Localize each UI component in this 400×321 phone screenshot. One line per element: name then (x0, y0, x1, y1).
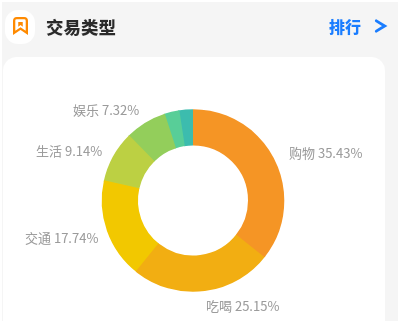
staticText: 吃喝 25.15% (206, 296, 280, 315)
staticText: 排行 (329, 14, 362, 37)
button[interactable]: 交易类型 (5, 10, 35, 44)
button[interactable]: 交易类型 (46, 14, 116, 39)
staticText: 交通 17.74% (25, 228, 99, 247)
staticText: 娱乐 7.32% (73, 100, 140, 119)
staticText: 交易类型 (46, 14, 116, 39)
staticText: 购物 35.43% (289, 143, 363, 162)
staticText: 生活 9.14% (36, 141, 103, 160)
button[interactable]: 排行 (323, 8, 392, 43)
